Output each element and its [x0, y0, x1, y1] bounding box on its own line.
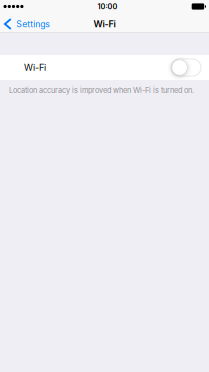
- staticText: Wi-Fi: [24, 62, 46, 73]
- staticText: 10:00: [98, 2, 118, 11]
- button[interactable]: Wi-Fi: [0, 55, 209, 80]
- button[interactable]: Settings: [0, 16, 54, 32]
- staticText: Wi-Fi: [93, 18, 115, 29]
- staticText: Settings: [16, 19, 50, 29]
- staticText: Location accuracy is improved when Wi-Fi…: [9, 86, 194, 95]
